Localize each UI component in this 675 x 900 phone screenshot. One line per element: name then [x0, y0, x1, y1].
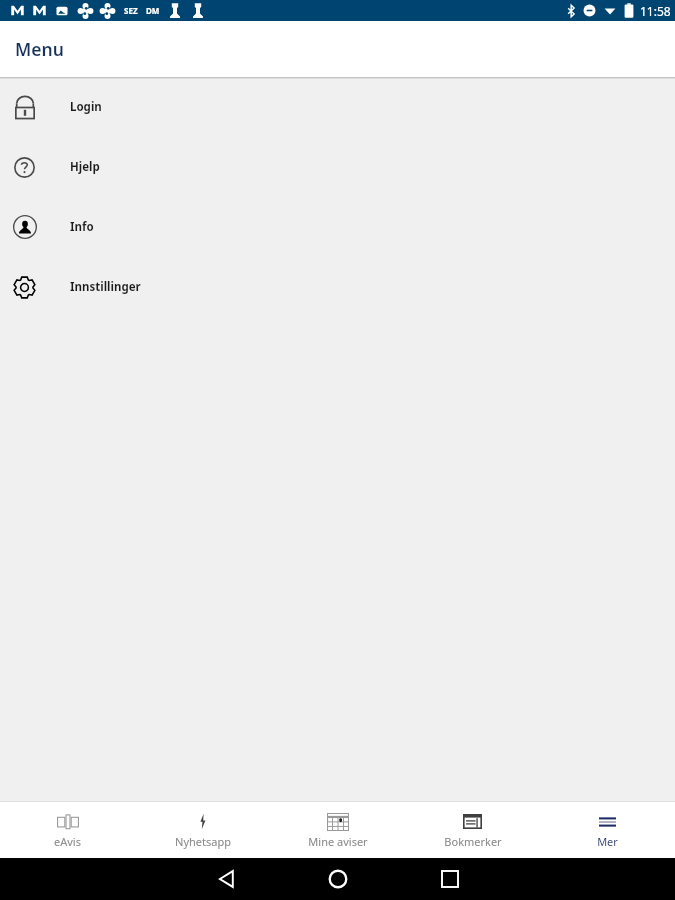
staticText: Login — [70, 99, 102, 115]
staticText: Mer — [597, 834, 618, 849]
staticText: SEZ — [124, 5, 138, 16]
staticText: Menu — [15, 37, 64, 61]
staticText: Mine aviser — [308, 834, 368, 849]
button[interactable]: Info — [0, 199, 675, 259]
button[interactable]: Innstillinger — [0, 259, 675, 319]
button[interactable]: Hjelp — [0, 139, 675, 199]
button[interactable]: Bokmerker — [405, 802, 540, 858]
staticText: Bokmerker — [444, 834, 502, 849]
button[interactable]: Mer — [540, 802, 675, 858]
button[interactable]: Login — [0, 79, 675, 139]
staticText: 11:58 — [640, 3, 671, 19]
staticText: Hjelp — [70, 159, 100, 175]
button[interactable]: Mine aviser — [270, 802, 405, 858]
button[interactable]: Recent apps — [422, 858, 478, 900]
staticText: Innstillinger — [70, 279, 141, 295]
button[interactable]: Back — [198, 858, 254, 900]
button[interactable]: Home — [310, 858, 366, 900]
staticText: Nyhetsapp — [175, 834, 231, 849]
staticText: Info — [70, 219, 94, 235]
staticText: DM — [146, 5, 160, 16]
button[interactable]: Nyhetsapp — [135, 802, 270, 858]
button[interactable]: eAvis — [0, 802, 135, 858]
staticText: eAvis — [54, 834, 81, 849]
